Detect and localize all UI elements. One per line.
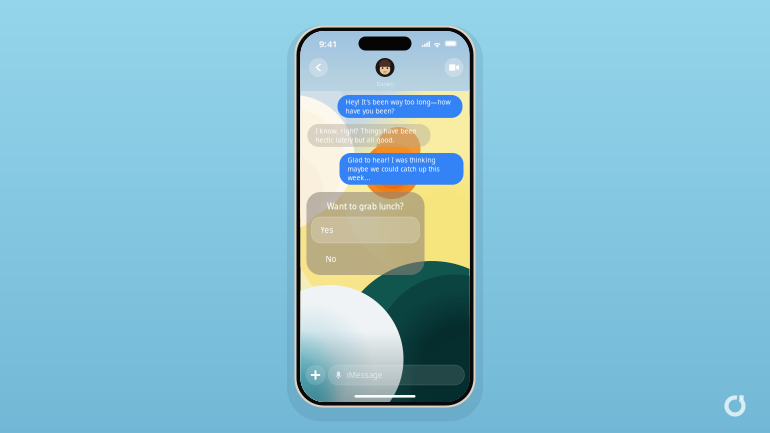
staticText: Glad to hear! I was thinking maybe we co…	[347, 156, 439, 182]
staticText: Yes	[320, 225, 333, 235]
staticText: Hey! It's been way too long—how have you…	[345, 98, 450, 115]
staticText: I know, right? Things have been hectic l…	[315, 127, 416, 144]
button[interactable]: FaceTime video call	[442, 56, 465, 79]
button[interactable]: No	[311, 247, 419, 271]
button[interactable]: Add attachment	[305, 365, 325, 385]
staticText: No	[325, 254, 336, 264]
staticText: Want to grab lunch?	[327, 201, 404, 212]
staticText: iMessage	[347, 370, 383, 380]
button[interactable]: Back	[307, 56, 330, 79]
button[interactable]: Yes	[311, 217, 419, 243]
staticText: 9:41	[319, 37, 337, 50]
staticText: Daniel J	[376, 80, 393, 88]
